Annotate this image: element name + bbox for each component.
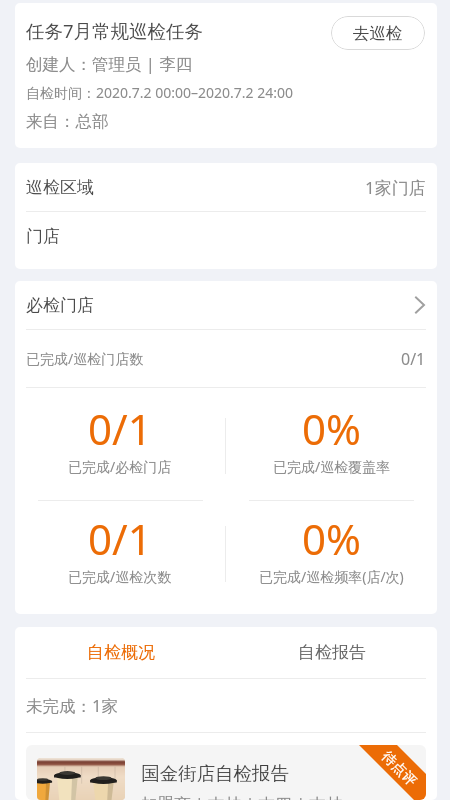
button[interactable]: 0/1 [15,388,225,500]
staticText: 0/1 [401,348,426,370]
button[interactable]: 必检门店 [15,281,437,329]
staticText: 0/1 [88,400,152,457]
other: 待点评 [26,745,426,800]
button[interactable]: 自检概况 [15,627,226,678]
button[interactable]: 国金街店自检报告 [26,745,426,800]
staticText: 任务7月常规巡检任务 [26,18,204,43]
staticText: 门店 [26,226,60,247]
button[interactable]: 0% [226,501,437,614]
staticText: 已完成/必检门店 [68,457,172,476]
staticText: 来自：总部 [26,111,109,132]
staticText: 巡检区域 [26,177,94,198]
staticText: 0% [302,400,361,457]
staticText: 自检概况 [87,642,155,663]
staticText: 0% [302,510,361,567]
staticText: 已完成/巡检频率(店/次) [259,567,404,586]
staticText: 去巡检 [353,23,403,44]
staticText: 未完成：1家 [26,694,118,717]
staticText: 1家门店 [365,176,426,199]
staticText: 已完成/巡检次数 [68,567,172,586]
staticText: 创建人：管理员 | 李四 [26,52,193,75]
staticText: 0/1 [88,510,152,567]
staticText: 已完成/巡检覆盖率 [273,457,391,476]
staticText: 必检门店 [26,295,94,316]
staticText: 已完成/巡检门店数 [26,349,144,368]
staticText: 自检时间：2020.7.2 00:00–2020.7.2 24:00 [26,83,293,102]
button[interactable]: 0% [226,388,437,500]
button[interactable]: 去巡检 [331,16,425,50]
staticText: 加盟商 | 吉林 | 吉四 | 吉林 [141,792,343,800]
staticText: 国金街店自检报告 [141,762,289,785]
button[interactable]: 0/1 [15,501,225,614]
other: 查看必检门店 [414,296,426,314]
button[interactable]: 自检报告 [226,627,437,678]
button[interactable]: 门店 [15,212,437,260]
button[interactable]: 巡检区域 [15,163,437,211]
staticText: 自检报告 [298,642,366,663]
